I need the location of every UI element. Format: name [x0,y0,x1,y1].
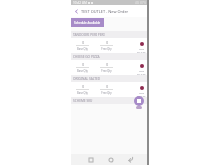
button[interactable]: Back [71,6,81,16]
staticText: Total [139,92,145,95]
button[interactable]: Total [135,86,148,97]
button[interactable]: Recent apps [85,154,96,165]
staticText: Base Qty [77,47,88,51]
staticText: 10:42 AM [73,1,87,5]
staticText: 0 [82,85,84,89]
button[interactable]: SCHEME SKU [71,97,149,104]
staticText: Rs. 0.00 [137,51,146,53]
button[interactable]: CHEESE GO PIZZA [71,53,149,60]
staticText: Free Qty [101,69,112,73]
staticText: Total [139,48,145,51]
button[interactable]: TANDOORI PERI PERI [71,31,149,38]
button[interactable]: Total [135,42,148,53]
staticText: 0 [82,63,84,67]
button[interactable]: 0 [100,85,113,95]
staticText: 0 [106,63,108,67]
staticText: Base Qty [77,69,88,73]
staticText: Free Qty [101,91,112,95]
staticText: TANDOORI PERI PERI [73,33,105,37]
button[interactable]: 0 [100,41,113,51]
staticText: 0 [106,85,108,89]
button[interactable]: 0 [76,63,89,73]
staticText: 4G 87% [135,1,147,5]
staticText: Total [139,70,145,73]
staticText: ORIGINAL SALTED [73,77,101,81]
button[interactable]: ORIGINAL SALTED [71,75,149,82]
button[interactable]: Total [135,64,148,75]
staticText: Free Qty [101,47,112,51]
staticText: Rs. 0.00 [137,73,146,75]
staticText: TEST OUTLET - New Order [81,9,129,14]
staticText: 0 [106,41,108,45]
staticText: Schedule Available [74,21,101,25]
button[interactable]: 0 [76,41,89,51]
staticText: Rs. 0.00 [137,95,146,97]
button[interactable]: Back [125,154,136,165]
button[interactable]: 0 [76,85,89,95]
staticText: 0 [82,41,84,45]
button[interactable]: Home [105,154,116,165]
staticText: CHEESE GO PIZZA [73,55,100,59]
staticText: Base Qty [77,91,88,95]
button[interactable]: Schedule Available [71,18,104,27]
button[interactable]: Back [71,5,149,17]
button[interactable]: Add item [134,96,144,106]
staticText: SCHEME SKU [73,99,93,103]
button[interactable]: 0 [100,63,113,73]
